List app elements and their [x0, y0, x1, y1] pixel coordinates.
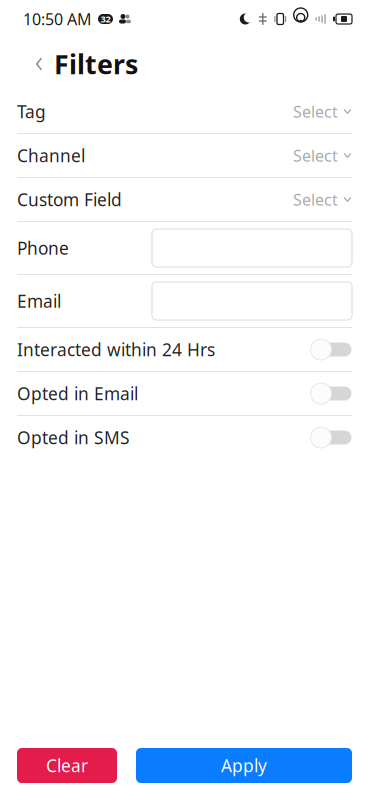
staticText: Filters	[54, 46, 138, 82]
staticText: Opted in SMS	[17, 426, 130, 449]
staticText: Custom Field	[17, 188, 122, 211]
button[interactable]: Tag	[17, 90, 352, 133]
staticText: 32	[100, 13, 110, 25]
button[interactable]: Email input	[152, 282, 352, 320]
button[interactable]: Interacted within 24 Hrs toggle, off	[310, 328, 352, 371]
button[interactable]: Back	[26, 49, 52, 79]
staticText: Select	[293, 145, 338, 166]
staticText: Select	[293, 189, 338, 210]
button[interactable]: Opted in SMS toggle, off	[310, 416, 352, 459]
button[interactable]: Clear	[17, 748, 117, 783]
staticText: Apply	[221, 754, 267, 777]
staticText: Channel	[17, 144, 85, 167]
button[interactable]: Phone input	[152, 229, 352, 267]
button[interactable]: Channel	[17, 134, 352, 177]
staticText: Email	[17, 289, 61, 312]
staticText: 10:50 AM	[23, 8, 92, 30]
button[interactable]: Opted in Email toggle, off	[310, 372, 352, 415]
staticText: Phone	[17, 236, 69, 259]
staticText: Clear	[46, 754, 88, 777]
button[interactable]: Apply	[136, 748, 352, 783]
button[interactable]: Custom Field	[17, 178, 352, 221]
staticText: Tag	[17, 100, 46, 123]
staticText: Interacted within 24 Hrs	[17, 338, 215, 361]
staticText: Select	[293, 101, 338, 122]
staticText: Opted in Email	[17, 382, 138, 405]
